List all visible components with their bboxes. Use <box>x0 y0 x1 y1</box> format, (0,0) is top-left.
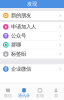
staticText: 群聊 <box>11 41 21 48</box>
staticText: 微信 <box>4 93 12 98</box>
button[interactable]: 发现 <box>32 83 48 100</box>
staticText: 新的朋友 <box>11 12 31 19</box>
button[interactable]: 我 <box>48 83 64 100</box>
button[interactable]: 企业微信 <box>0 64 64 73</box>
staticText: 企业微信 <box>11 66 31 72</box>
staticText: 我 <box>54 93 58 98</box>
staticText: 通讯录 <box>18 93 30 98</box>
staticText: 公众号 <box>11 32 26 39</box>
button[interactable]: 公众号 <box>0 31 64 40</box>
button[interactable]: 新的朋友 <box>0 11 64 20</box>
staticText: 发现 <box>27 1 37 7</box>
staticText: 标签组 <box>11 51 26 57</box>
button[interactable]: 微信 <box>0 83 16 100</box>
button[interactable]: 申请加入人 <box>0 22 64 31</box>
button[interactable]: 标签组 <box>0 49 64 58</box>
staticText: 申请加入人 <box>11 23 36 30</box>
button[interactable]: 群聊 <box>0 40 64 49</box>
button[interactable]: 通讯录 <box>16 83 32 100</box>
staticText: 发现 <box>36 93 44 98</box>
